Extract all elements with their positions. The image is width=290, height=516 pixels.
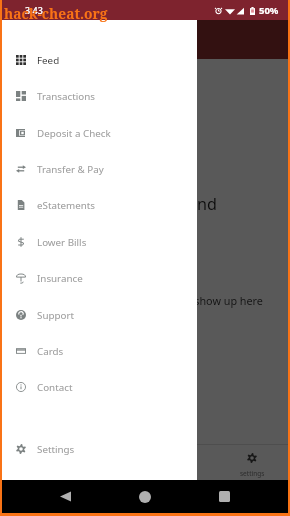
- staticText: Lower Bills: [37, 236, 87, 249]
- button[interactable]: settings: [216, 453, 288, 480]
- button[interactable]: Transfer & Pay: [2, 151, 197, 187]
- button[interactable]: deposit: [144, 453, 216, 480]
- staticText: Transfer & Pay: [37, 163, 104, 176]
- staticText: Insurance: [37, 272, 83, 285]
- staticText: eStatements: [37, 199, 95, 212]
- button[interactable]: eStatements: [2, 187, 197, 223]
- button[interactable]: Contact: [2, 369, 197, 405]
- staticText: Feed: [37, 54, 60, 67]
- staticText: Support: [37, 309, 74, 322]
- staticText: Settings: [37, 443, 75, 456]
- staticText: No accounts found: [2, 193, 288, 215]
- staticText: Transactions: [37, 90, 95, 103]
- button[interactable]: accounts: [2, 453, 73, 480]
- staticText: 50%: [259, 4, 279, 17]
- button[interactable]: Back: [37, 480, 93, 513]
- staticText: Contact: [37, 381, 73, 394]
- staticText: Accounts you add to the app will show up…: [2, 293, 288, 308]
- button[interactable]: Home: [117, 480, 173, 513]
- button[interactable]: Insurance: [2, 260, 197, 296]
- button[interactable]: Support: [2, 297, 197, 333]
- staticText: hack-cheat.org: [4, 4, 108, 23]
- staticText: 3:43: [25, 4, 43, 16]
- staticText: Deposit a Check: [37, 127, 111, 140]
- staticText: Cards: [37, 345, 64, 358]
- button[interactable]: Transactions: [2, 78, 197, 114]
- button[interactable]: Settings: [2, 431, 197, 467]
- button[interactable]: Feed: [2, 42, 197, 78]
- button[interactable]: Recents: [196, 480, 252, 513]
- button[interactable]: Deposit a Check: [2, 115, 197, 151]
- button[interactable]: Cards: [2, 333, 197, 369]
- button[interactable]: Lower Bills: [2, 224, 197, 260]
- staticText: settings: [240, 469, 265, 478]
